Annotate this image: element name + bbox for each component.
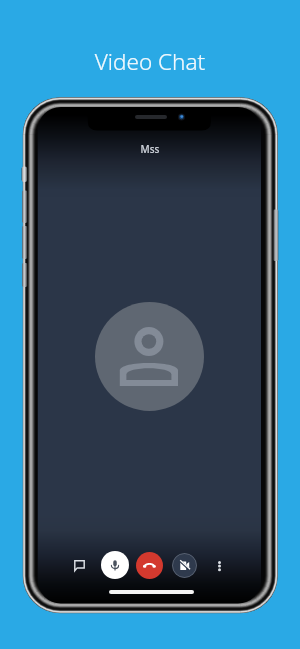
button[interactable]: Chat [66, 552, 93, 579]
button[interactable]: End call [136, 552, 163, 579]
button[interactable]: Turn off camera [172, 553, 197, 578]
button[interactable]: Mute microphone [101, 551, 129, 579]
staticText: Video Chat [0, 46, 300, 77]
button[interactable]: More options [208, 555, 230, 577]
staticText: Mss [0, 142, 300, 156]
